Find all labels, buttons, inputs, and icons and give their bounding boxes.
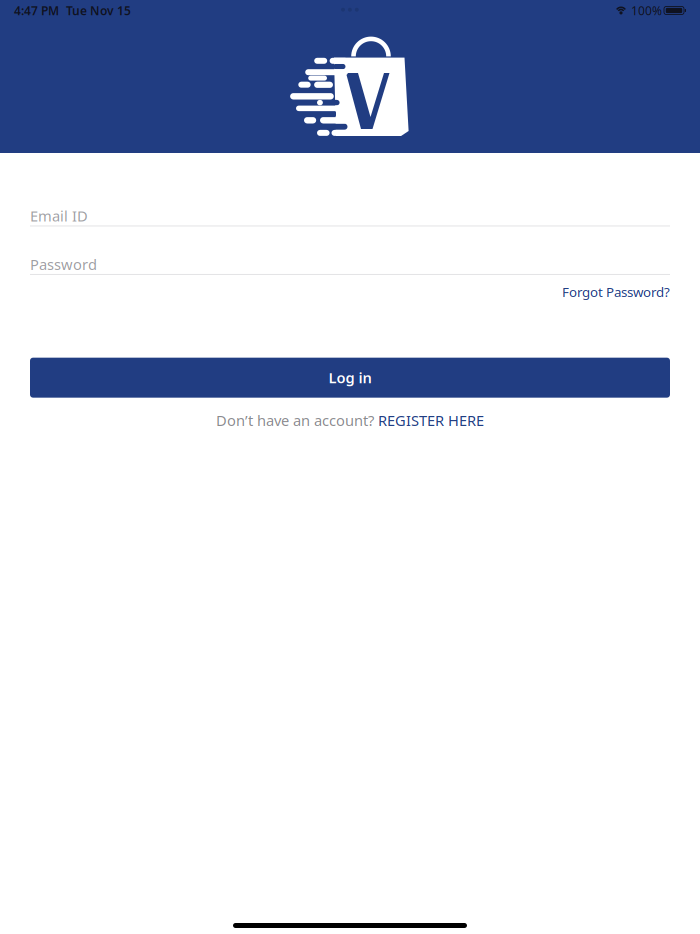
button[interactable]: Don’t have an account?: [30, 411, 670, 430]
staticText: Log in: [328, 368, 371, 387]
staticText: Email ID: [30, 206, 88, 225]
staticText: Forgot Password?: [562, 283, 670, 301]
staticText: 4:47 PM: [14, 2, 59, 18]
button[interactable]: Log in: [30, 358, 670, 398]
staticText: Password: [30, 254, 97, 274]
staticText: Don’t have an account?: [216, 411, 374, 430]
staticText: REGISTER HERE: [378, 411, 484, 430]
button[interactable]: Forgot Password?: [30, 283, 670, 301]
staticText: Tue Nov 15: [66, 2, 131, 18]
staticText: 100%: [631, 2, 662, 18]
